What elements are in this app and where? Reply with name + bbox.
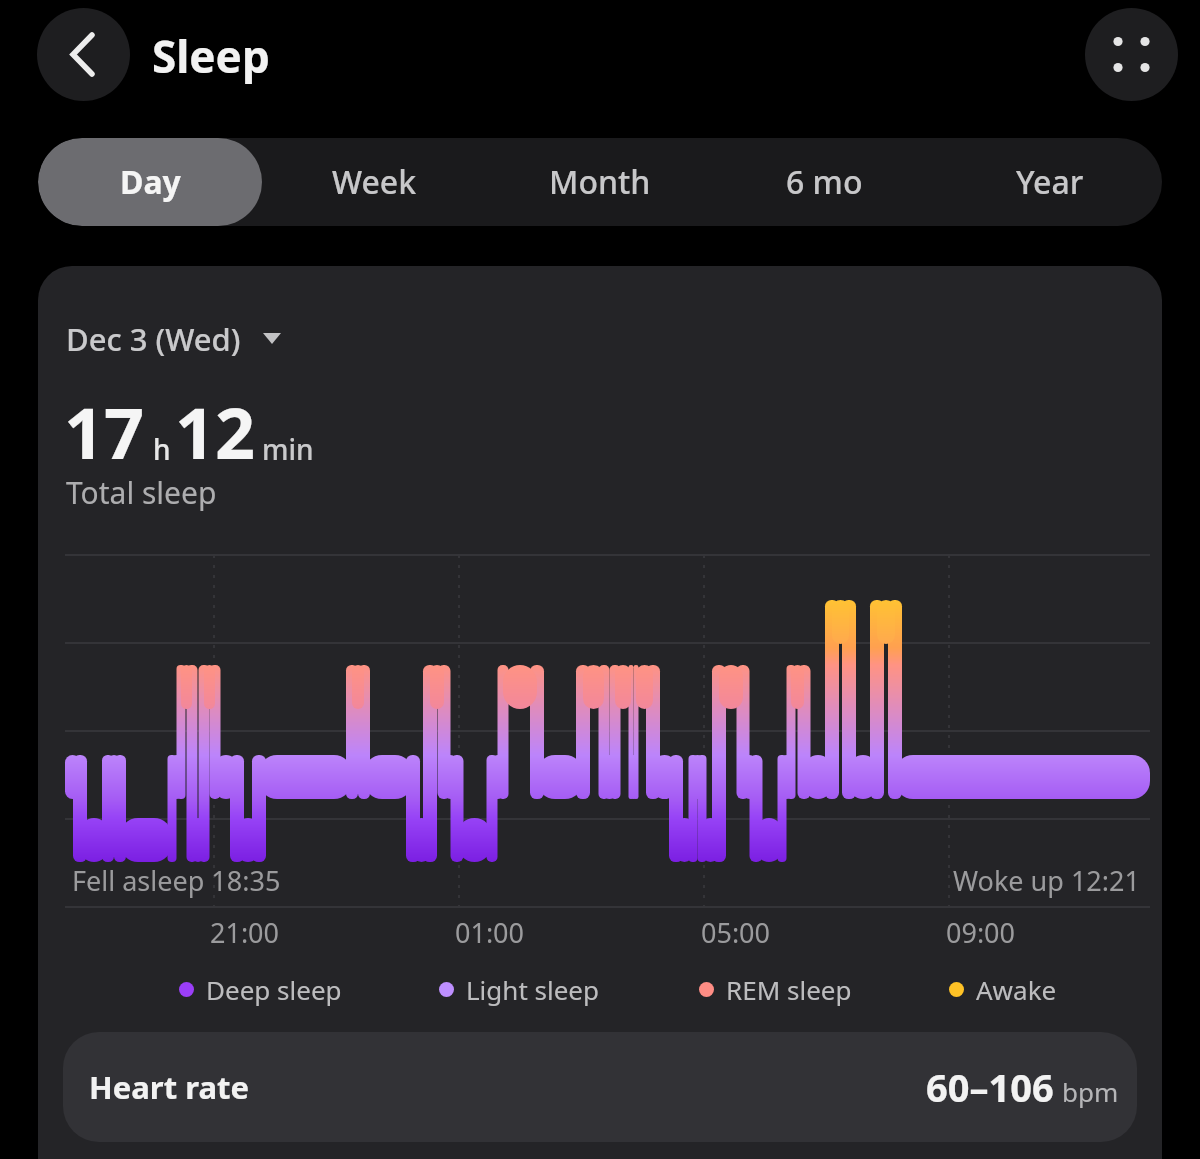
staticText: min: [262, 430, 314, 468]
staticText: Fell asleep 18:35: [72, 862, 281, 899]
staticText: Deep sleep: [206, 972, 342, 1007]
button[interactable]: [37, 8, 130, 101]
staticText: Sleep: [152, 26, 270, 86]
staticText: Woke up 12:21: [953, 862, 1140, 899]
button[interactable]: [1085, 8, 1178, 101]
staticText: Awake: [976, 972, 1057, 1007]
staticText: 05:00: [701, 914, 771, 951]
button[interactable]: Week: [262, 138, 487, 226]
button[interactable]: Dec 3 (Wed): [66, 318, 281, 360]
button[interactable]: Day: [38, 138, 262, 226]
staticText: Year: [1016, 160, 1084, 204]
staticText: 6 mo: [786, 160, 863, 204]
staticText: Heart rate: [89, 1066, 249, 1108]
button[interactable]: Heart rate: [63, 1032, 1137, 1142]
staticText: bpm: [1062, 1074, 1119, 1109]
button[interactable]: Year: [937, 138, 1162, 226]
staticText: 09:00: [946, 914, 1016, 951]
staticText: 21:00: [210, 914, 280, 951]
staticText: h: [153, 430, 171, 468]
staticText: Light sleep: [466, 972, 600, 1007]
staticText: Day: [120, 160, 181, 204]
button[interactable]: 6 mo: [712, 138, 937, 226]
staticText: 01:00: [455, 914, 525, 951]
button[interactable]: Month: [487, 138, 712, 226]
staticText: 12: [175, 384, 256, 479]
staticText: REM sleep: [726, 972, 852, 1007]
staticText: 60–106: [926, 1061, 1054, 1113]
staticText: Week: [332, 160, 417, 204]
staticText: Month: [549, 160, 651, 204]
staticText: Total sleep: [66, 472, 217, 513]
staticText: Dec 3 (Wed): [66, 318, 241, 360]
staticText: 17: [64, 384, 145, 479]
